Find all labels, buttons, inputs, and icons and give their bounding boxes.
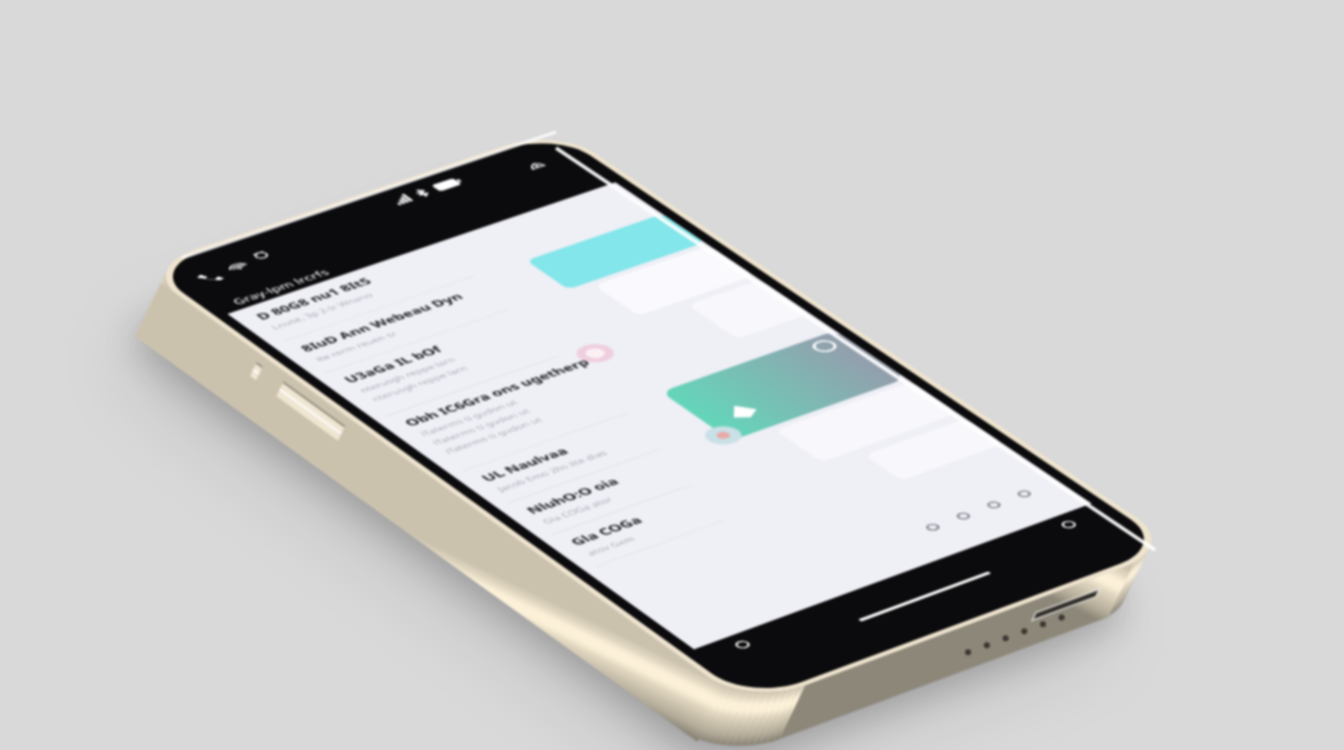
button[interactable]: NluhO:O oia	[0, 440, 360, 496]
button[interactable]: U3aGa IL bOf	[0, 202, 360, 282]
button[interactable]: 8IuD Ann Webeau Dyn	[0, 144, 360, 202]
button[interactable]	[232, 146, 360, 202]
button[interactable]	[198, 370, 360, 460]
button[interactable]: Gla COGa	[0, 496, 360, 552]
button[interactable]	[252, 208, 360, 266]
button[interactable]: Obh IC6Gra ons ugetherp	[0, 282, 360, 382]
staticText: Obh IC6Gra ons ugetherp	[16, 291, 181, 309]
button[interactable]: UL Naulvaa	[0, 382, 360, 440]
